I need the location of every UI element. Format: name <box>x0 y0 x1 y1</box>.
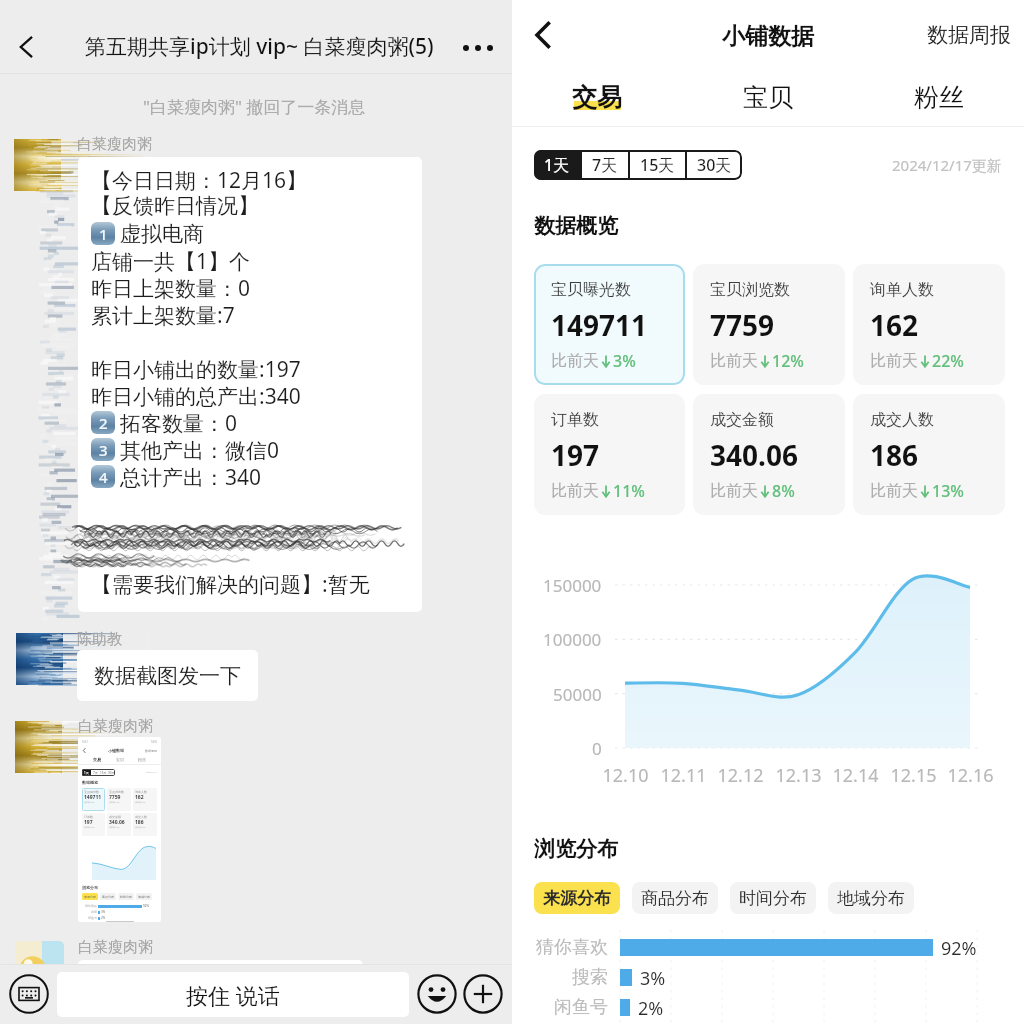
staticText: 搜索 <box>91 910 97 914</box>
button[interactable]: Back <box>520 12 566 58</box>
staticText: 宝贝曝光数 <box>84 790 99 794</box>
button[interactable]: 按住 说话 <box>57 972 409 1017</box>
button[interactable]: 【今日日期：12月16】 <box>78 157 422 612</box>
staticText: 30天 <box>108 771 115 775</box>
button[interactable]: 30天 <box>687 150 742 180</box>
staticText: 成交金额 <box>710 410 774 430</box>
button[interactable]: 1天 <box>534 150 580 180</box>
staticText: 陈助教 <box>77 630 122 649</box>
staticText: 时间分布 <box>120 895 132 899</box>
staticText: 比前天↓3% <box>109 801 120 804</box>
staticText: 比前天↓3% <box>84 801 95 804</box>
staticText: 交易 <box>572 82 622 113</box>
staticText: 15天 <box>100 771 107 775</box>
staticText: 【需要我们解决的问题】:暂无 <box>91 570 370 599</box>
staticText: 12.11 <box>660 763 707 788</box>
button[interactable]: Keyboard <box>8 973 50 1015</box>
staticText: 186 <box>135 819 144 826</box>
button[interactable]: 7天 <box>582 150 628 180</box>
staticText: 浏览分布 <box>534 836 618 862</box>
staticText: 149711 <box>84 794 102 801</box>
staticText: 闲鱼号 <box>554 996 608 1018</box>
button[interactable]: 数据截图发一下 <box>77 650 258 701</box>
button[interactable]: 地域分布 <box>828 882 914 914</box>
staticText: 白菜瘦肉粥 <box>77 135 152 154</box>
staticText: 比前天↓3% <box>84 826 95 829</box>
staticText: 宝贝 <box>743 82 793 113</box>
staticText: 商品分布 <box>102 895 114 899</box>
staticText: 比前天↓3% <box>135 826 146 829</box>
staticText: 其他产出：微信0 <box>120 436 280 463</box>
staticText: 宝贝浏览数 <box>710 280 790 300</box>
staticText: 7天 <box>93 771 98 775</box>
button[interactable]: 商品分布 <box>632 882 718 914</box>
button[interactable]: 9:41 <box>78 737 161 922</box>
staticText: 92% <box>143 904 149 908</box>
staticText: 12% <box>772 350 804 372</box>
staticText: 100000 <box>543 628 602 651</box>
button[interactable]: Back <box>4 25 48 69</box>
staticText: 白菜瘦肉粥 <box>78 717 153 736</box>
staticText: 第五期共享ip计划 vip~ 白菜瘦肉粥(5) <box>85 32 434 61</box>
button[interactable]: 成交人数 <box>853 394 1005 515</box>
staticText: 比前天 <box>870 351 918 371</box>
staticText: 12.10 <box>602 763 649 788</box>
button[interactable]: 询单人数 <box>853 264 1005 385</box>
staticText: 拓客数量：0 <box>120 409 238 436</box>
staticText: 12.12 <box>717 763 764 788</box>
staticText: 197 <box>551 436 600 474</box>
staticText: 54% <box>151 740 157 744</box>
staticText: 比前天 <box>551 481 599 501</box>
staticText: 22% <box>932 350 964 372</box>
staticText: 7759 <box>710 306 775 344</box>
staticText: 数据周报 <box>927 22 1011 48</box>
staticText: 13% <box>932 480 964 502</box>
button[interactable]: 宝贝 <box>682 68 853 126</box>
button[interactable]: 数据周报 <box>919 14 1019 56</box>
staticText: 186 <box>870 436 919 474</box>
button[interactable]: 来源分布 <box>534 882 620 914</box>
staticText: 2% <box>638 996 664 1018</box>
staticText: 197 <box>84 819 93 826</box>
staticText: 询单人数 <box>870 280 934 300</box>
staticText: 3 <box>99 440 108 460</box>
staticText: 12.16 <box>947 763 994 788</box>
button[interactable]: 时间分布 <box>730 882 816 914</box>
staticText: 地域分布 <box>837 888 905 909</box>
staticText: 比前天↓3% <box>109 826 120 829</box>
staticText: 昨日小铺出的数量:197 <box>91 355 301 382</box>
staticText: 比前天 <box>870 481 918 501</box>
staticText: "白菜瘦肉粥" 撤回了一条消息 <box>143 95 366 118</box>
staticText: 数据概览 <box>534 213 618 239</box>
button[interactable]: 订单数 <box>534 394 685 515</box>
staticText: 1天 <box>544 154 570 176</box>
staticText: 7759 <box>109 794 121 801</box>
button[interactable]: More options <box>456 26 500 70</box>
staticText: 数据截图发一下 <box>94 663 241 689</box>
staticText: 宝贝 <box>116 757 124 762</box>
button[interactable]: 宝贝曝光数 <box>534 264 685 385</box>
staticText: 2 <box>99 413 108 433</box>
staticText: 162 <box>135 794 144 801</box>
staticText: 1 <box>99 224 108 244</box>
staticText: 订单数 <box>84 815 93 819</box>
button[interactable]: More <box>462 973 504 1015</box>
staticText: 成交人数 <box>135 815 147 819</box>
staticText: 询单人数 <box>135 790 147 794</box>
staticText: 3% <box>101 910 106 914</box>
button[interactable]: 宝贝浏览数 <box>693 264 845 385</box>
staticText: 1天 <box>84 771 89 775</box>
button[interactable]: Emoji <box>416 973 458 1015</box>
staticText: 商品分布 <box>641 888 709 909</box>
button[interactable]: 15天 <box>630 150 685 180</box>
staticText: 昨日小铺的总产出:340 <box>91 382 301 409</box>
staticText: 3% <box>640 966 666 988</box>
staticText: 【今日日期：12月16】 <box>91 166 308 193</box>
staticText: 闲鱼号 <box>88 916 97 920</box>
button[interactable]: 粉丝 <box>853 68 1024 126</box>
button[interactable]: 成交金额 <box>693 394 845 515</box>
button[interactable]: 交易 <box>512 68 682 126</box>
staticText: 成交人数 <box>870 410 934 430</box>
staticText: 猜你喜欢 <box>536 936 608 958</box>
staticText: 7天 <box>592 154 618 176</box>
